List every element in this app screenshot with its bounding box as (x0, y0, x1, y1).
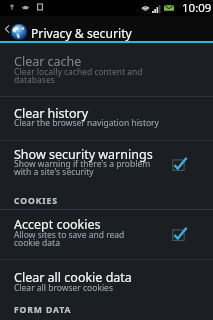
staticText: Clear history (14, 105, 89, 122)
staticText: Privacy & security (31, 25, 132, 42)
staticText: Show warning if there's a problem with a… (14, 158, 156, 178)
staticText: Accept cookies (14, 216, 101, 233)
staticText: 10:09 (182, 0, 212, 16)
button[interactable]: Clear cache (0, 43, 213, 96)
button[interactable]: Show security warnings (164, 154, 192, 176)
button[interactable]: Clear all cookie data (0, 260, 213, 300)
staticText: COOKIES (14, 195, 58, 207)
staticText: Clear the browser navigation history (14, 117, 174, 129)
staticText: Allow sites to save and read cookie data (14, 229, 145, 249)
staticText: FORM DATA (14, 304, 72, 316)
button[interactable]: Show security warnings (0, 141, 213, 193)
staticText: Clear cache (14, 53, 82, 70)
staticText: Clear all cookie data (14, 269, 132, 286)
staticText: Clear locally cached content and databas… (14, 66, 156, 86)
button[interactable]: Accept cookies (0, 210, 213, 259)
button[interactable]: Accept cookies (164, 224, 192, 246)
button[interactable]: Navigate up (0, 16, 213, 41)
staticText: Clear all browser cookies (14, 282, 174, 294)
button[interactable]: Clear history (0, 97, 213, 140)
staticText: Show security warnings (14, 146, 153, 163)
